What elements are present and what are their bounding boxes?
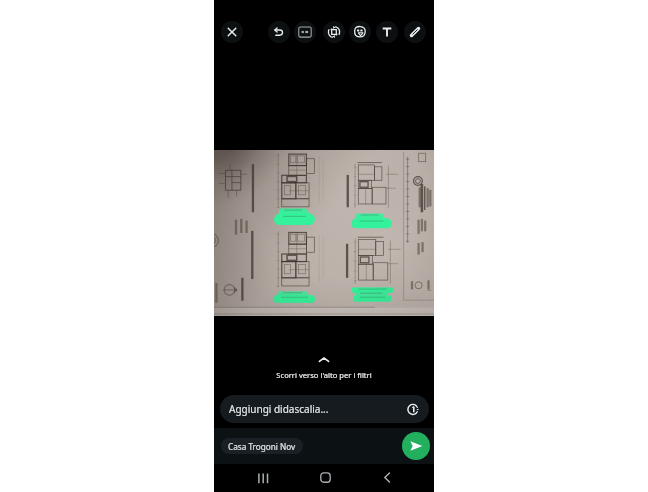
button[interactable]: Filters bbox=[317, 356, 331, 364]
button[interactable]: Casa Trogoni Nov bbox=[221, 438, 303, 454]
button[interactable]: Undo bbox=[268, 21, 290, 43]
button[interactable]: Send bbox=[402, 432, 430, 460]
button[interactable]: Add caption bbox=[294, 21, 316, 43]
button[interactable]: Text bbox=[376, 21, 398, 43]
button[interactable]: Crop and rotate bbox=[323, 21, 345, 43]
button[interactable]: Back bbox=[382, 472, 393, 483]
staticText: Aggiungi didascalia... bbox=[229, 402, 329, 416]
staticText: Casa Trogoni Nov bbox=[228, 441, 296, 452]
staticText: Scorri verso l'alto per i filtri bbox=[276, 370, 372, 380]
button[interactable]: Recents bbox=[258, 473, 269, 484]
button[interactable]: View once bbox=[406, 402, 421, 417]
button[interactable]: Aggiungi didascalia... bbox=[220, 395, 429, 423]
button[interactable]: Home bbox=[320, 472, 331, 483]
button[interactable]: Sticker bbox=[349, 21, 371, 43]
button[interactable]: Draw bbox=[404, 21, 426, 43]
button[interactable]: Close bbox=[221, 21, 243, 43]
